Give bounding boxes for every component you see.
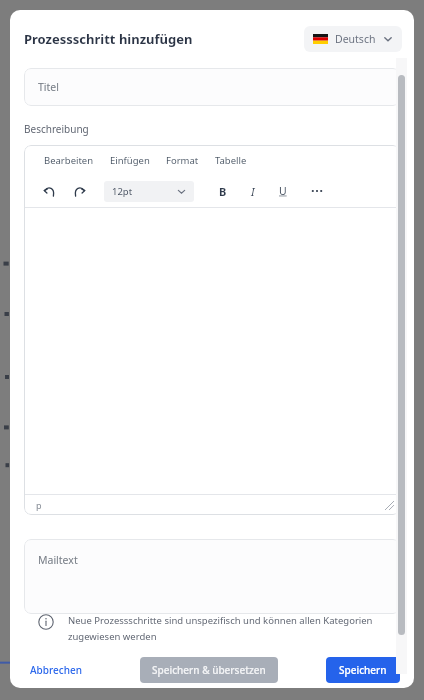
- button[interactable]: Titel: [24, 68, 400, 106]
- button[interactable]: Bearbeiten: [40, 151, 98, 170]
- staticText: Neue Prozessschritte sind unspezifisch u…: [68, 614, 373, 627]
- staticText: Einfügen: [110, 154, 150, 167]
- button[interactable]: Speichern & übersetzen: [140, 657, 278, 683]
- staticText: U: [279, 184, 287, 198]
- staticText: Prozessschritt hinzufügen: [24, 30, 193, 48]
- staticText: B: [219, 184, 227, 199]
- button[interactable]: Tabelle: [211, 151, 251, 170]
- staticText: 12pt: [112, 185, 133, 198]
- staticText: Beschreibung: [24, 122, 89, 136]
- staticText: Tabelle: [215, 154, 247, 167]
- button[interactable]: I: [242, 180, 264, 202]
- button[interactable]: 12pt: [104, 181, 194, 202]
- staticText: I: [251, 184, 255, 199]
- button[interactable]: Mailtext: [24, 539, 400, 614]
- staticText: Deutsch: [335, 32, 376, 46]
- staticText: Bearbeiten: [44, 154, 94, 167]
- staticText: zugewiesen werden: [68, 630, 157, 643]
- button[interactable]: Deutsch: [304, 26, 402, 52]
- button[interactable]: More formatting options: [306, 180, 328, 202]
- staticText: Format: [166, 154, 199, 167]
- staticText: p: [36, 499, 42, 511]
- staticText: Speichern: [339, 663, 387, 677]
- staticText: Titel: [38, 80, 59, 94]
- button[interactable]: Einfügen: [106, 151, 154, 170]
- button[interactable]: Abbrechen: [24, 659, 88, 681]
- staticText: Abbrechen: [30, 663, 82, 677]
- button[interactable]: Redo: [68, 180, 90, 202]
- staticText: Speichern & übersetzen: [152, 663, 266, 677]
- button[interactable]: Undo: [38, 180, 60, 202]
- button[interactable]: B: [212, 180, 234, 202]
- button[interactable]: [24, 208, 400, 494]
- staticText: Mailtext: [38, 553, 78, 567]
- button[interactable]: U: [272, 180, 294, 202]
- button[interactable]: Speichern: [326, 657, 400, 683]
- button[interactable]: Format: [162, 151, 203, 170]
